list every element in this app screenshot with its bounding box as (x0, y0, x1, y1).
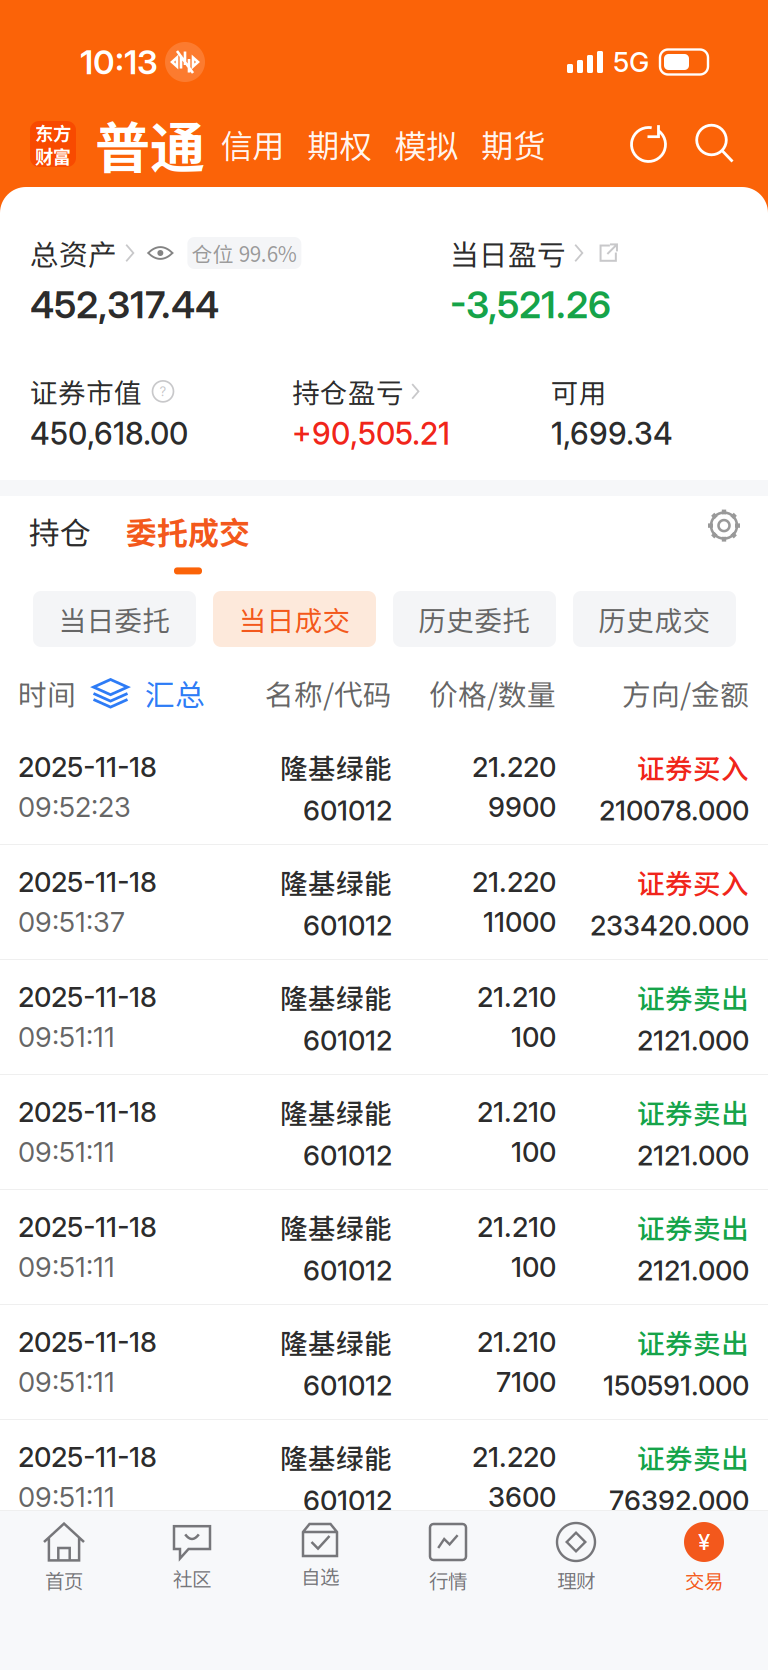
staticText: 2025-11-18 (18, 865, 157, 898)
button[interactable]: 委托成交 (91, 502, 250, 574)
staticText: 2025-11-18 (18, 980, 157, 1013)
staticText: 证券卖出 (637, 1322, 749, 1362)
staticText: 首页 (45, 1566, 83, 1594)
staticText: 名称/代码 (265, 672, 392, 714)
staticText: 理财 (557, 1566, 595, 1594)
staticText: ¥ (698, 1528, 710, 1555)
button[interactable]: 行情 (384, 1522, 512, 1604)
button[interactable]: 2025-11-18 (0, 730, 768, 844)
button[interactable]: Refresh (629, 123, 668, 164)
button[interactable]: Search (668, 123, 734, 164)
staticText: 期货 (481, 121, 545, 167)
staticText: 持仓 (29, 509, 91, 553)
button[interactable]: 2025-11-18 (0, 1305, 768, 1419)
button[interactable]: 2025-11-18 (0, 1190, 768, 1304)
staticText: 汇总 (145, 671, 205, 715)
staticText: 证券买入 (637, 862, 749, 902)
staticText: 21.210 (477, 980, 556, 1013)
staticText: 时间 (18, 672, 76, 714)
staticText: 总资产 (30, 232, 117, 274)
button[interactable]: 持仓 (29, 502, 91, 553)
staticText: 证券卖出 (637, 1092, 749, 1132)
staticText: ? (159, 383, 166, 399)
staticText: 2121.000 (637, 1254, 749, 1287)
staticText: 证券卖出 (637, 1207, 749, 1247)
staticText: 隆基绿能 (280, 1207, 392, 1247)
staticText: 东方 (35, 119, 71, 145)
button[interactable]: 模拟 (383, 121, 470, 167)
button[interactable]: 汇总 (76, 671, 205, 715)
staticText: 09:51:37 (18, 905, 125, 939)
staticText: 5G (613, 45, 649, 78)
staticText: 09:51:11 (18, 1480, 115, 1514)
staticText: 证券卖出 (637, 977, 749, 1017)
button[interactable]: 历史成交 (573, 591, 736, 647)
staticText: 601012 (303, 794, 392, 827)
staticText: 09:51:11 (18, 1135, 115, 1169)
staticText: -3,521.26 (450, 282, 611, 327)
staticText: 2025-11-18 (18, 1440, 157, 1473)
staticText: 方向/金额 (622, 672, 749, 714)
button[interactable]: 信用 (209, 121, 296, 167)
staticText: 财富 (35, 142, 71, 169)
staticText: 历史委托 (418, 599, 530, 639)
staticText: 隆基绿能 (280, 1092, 392, 1132)
button[interactable]: 首页 (0, 1522, 128, 1604)
staticText: 交易 (685, 1566, 723, 1594)
staticText: 601012 (303, 1024, 392, 1057)
staticText: 2121.000 (637, 1024, 749, 1057)
button[interactable]: 期权 (296, 121, 383, 167)
staticText: 2025-11-18 (18, 1095, 157, 1128)
staticText: 2025-11-18 (18, 1325, 157, 1358)
staticText: 当日成交 (238, 599, 350, 639)
button[interactable]: ¥ (640, 1522, 768, 1604)
staticText: 隆基绿能 (280, 977, 392, 1017)
staticText: 21.210 (477, 1325, 556, 1358)
button[interactable]: 期货 (470, 121, 557, 167)
staticText: 9900 (488, 790, 556, 824)
button[interactable]: 2025-11-18 (0, 1075, 768, 1189)
staticText: 601012 (303, 1254, 392, 1287)
staticText: 隆基绿能 (280, 862, 392, 902)
button[interactable]: 当日成交 (213, 591, 376, 647)
staticText: 150591.000 (603, 1369, 749, 1402)
button[interactable]: 历史委托 (393, 591, 556, 647)
staticText: 社区 (173, 1564, 211, 1592)
staticText: 模拟 (394, 121, 458, 167)
staticText: 21.210 (477, 1095, 556, 1128)
staticText: 当日委托 (58, 599, 170, 639)
staticText: 100 (511, 1250, 556, 1284)
staticText: 601012 (303, 1484, 392, 1517)
staticText: 452,317.44 (30, 282, 219, 327)
staticText: 委托成交 (126, 509, 250, 553)
staticText: 2025-11-18 (18, 750, 157, 783)
staticText: 持仓盈亏 (292, 371, 404, 411)
staticText: 100 (511, 1020, 556, 1054)
button[interactable]: 自选 (256, 1522, 384, 1604)
staticText: 21.210 (477, 1210, 556, 1243)
staticText: 76392.000 (609, 1484, 749, 1517)
staticText: 21.220 (472, 865, 556, 898)
staticText: 信用 (220, 121, 284, 167)
staticText: 09:51:11 (18, 1365, 115, 1399)
staticText: 210078.000 (599, 794, 749, 827)
staticText: 价格/数量 (429, 672, 556, 714)
button[interactable]: 2025-11-18 (0, 845, 768, 959)
button[interactable]: Settings (706, 502, 742, 544)
button[interactable]: 普通 (76, 104, 209, 184)
button[interactable]: 2025-11-18 (0, 960, 768, 1074)
staticText: 隆基绿能 (280, 747, 392, 787)
button[interactable]: 理财 (512, 1522, 640, 1604)
staticText: 2121.000 (637, 1139, 749, 1172)
staticText: 21.220 (472, 750, 556, 783)
staticText: 1,699.34 (551, 415, 673, 452)
staticText: 09:51:11 (18, 1250, 115, 1284)
button[interactable]: 2025-11-18 (0, 1420, 768, 1534)
staticText: 自选 (301, 1562, 339, 1590)
button[interactable]: 当日委托 (33, 591, 196, 647)
button[interactable]: 社区 (128, 1522, 256, 1604)
staticText: 601012 (303, 1139, 392, 1172)
staticText: 11000 (483, 905, 556, 939)
staticText: 证券市值 (30, 371, 142, 411)
staticText: 2025-11-18 (18, 1210, 157, 1243)
